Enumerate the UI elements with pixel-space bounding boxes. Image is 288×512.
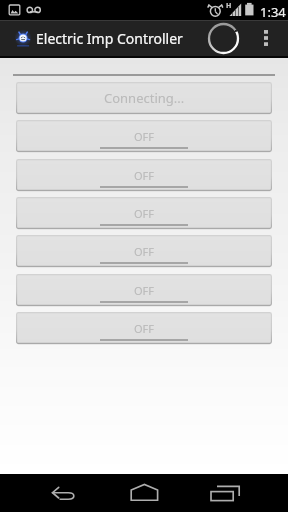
button[interactable]: OFF	[16, 274, 272, 306]
button[interactable]: Recent apps	[129, 474, 177, 512]
staticText: OFF	[134, 244, 155, 259]
staticText: H	[226, 1, 232, 11]
button[interactable]: OFF	[16, 235, 272, 267]
button[interactable]: Back	[40, 474, 88, 512]
button[interactable]: Connecting...	[16, 82, 272, 114]
staticText: Connecting...	[104, 89, 185, 107]
staticText: OFF	[134, 321, 155, 336]
button[interactable]: OFF	[16, 159, 272, 191]
staticText: Electric Imp Controller	[36, 29, 183, 48]
button[interactable]: More options	[253, 20, 279, 56]
staticText: OFF	[134, 129, 155, 144]
staticText: OFF	[134, 168, 155, 183]
staticText: 1:34	[260, 3, 286, 21]
staticText: OFF	[134, 283, 155, 298]
button[interactable]: OFF	[16, 197, 272, 229]
staticText: OFF	[134, 206, 155, 221]
button[interactable]: OFF	[16, 312, 272, 344]
button[interactable]: OFF	[16, 120, 272, 152]
